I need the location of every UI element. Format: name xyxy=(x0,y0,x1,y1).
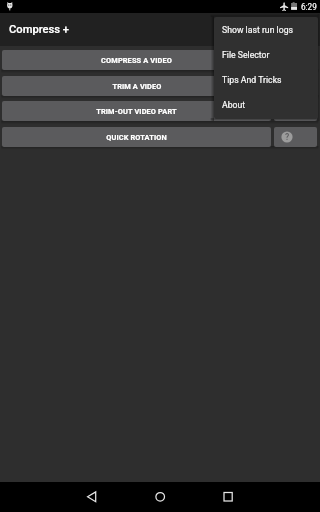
button[interactable]: Help xyxy=(274,101,317,121)
staticText: Tips And Tricks xyxy=(222,75,282,85)
staticText: Show last run logs xyxy=(222,25,294,35)
button[interactable]: COMPRESS A VIDEO xyxy=(2,50,271,70)
button[interactable]: Home xyxy=(144,482,176,512)
button[interactable]: TRIM A VIDEO xyxy=(2,76,271,96)
staticText: Compress + xyxy=(9,23,70,36)
button[interactable]: Tips And Tricks xyxy=(214,67,318,92)
other: Navigation bar xyxy=(0,482,320,512)
button[interactable]: Show last run logs xyxy=(214,17,318,42)
button[interactable]: Help xyxy=(274,76,317,96)
button[interactable]: Back xyxy=(76,482,108,512)
button[interactable]: QUICK ROTATION xyxy=(2,127,271,147)
button[interactable]: File Selector xyxy=(214,42,318,67)
button[interactable]: TRIM-OUT VIDEO PART xyxy=(2,101,271,121)
staticText: File Selector xyxy=(222,50,270,60)
staticText: About xyxy=(222,100,246,110)
staticText: TRIM-OUT VIDEO PART xyxy=(96,107,177,116)
button[interactable]: Help xyxy=(274,127,317,147)
staticText: COMPRESS A VIDEO xyxy=(101,56,172,65)
button[interactable]: Recent apps xyxy=(212,482,244,512)
staticText: QUICK ROTATION xyxy=(106,133,167,142)
button[interactable]: About xyxy=(214,92,318,117)
staticText: TRIM A VIDEO xyxy=(112,82,162,91)
staticText: 6:29 xyxy=(301,2,317,12)
staticText: ? xyxy=(285,132,290,142)
